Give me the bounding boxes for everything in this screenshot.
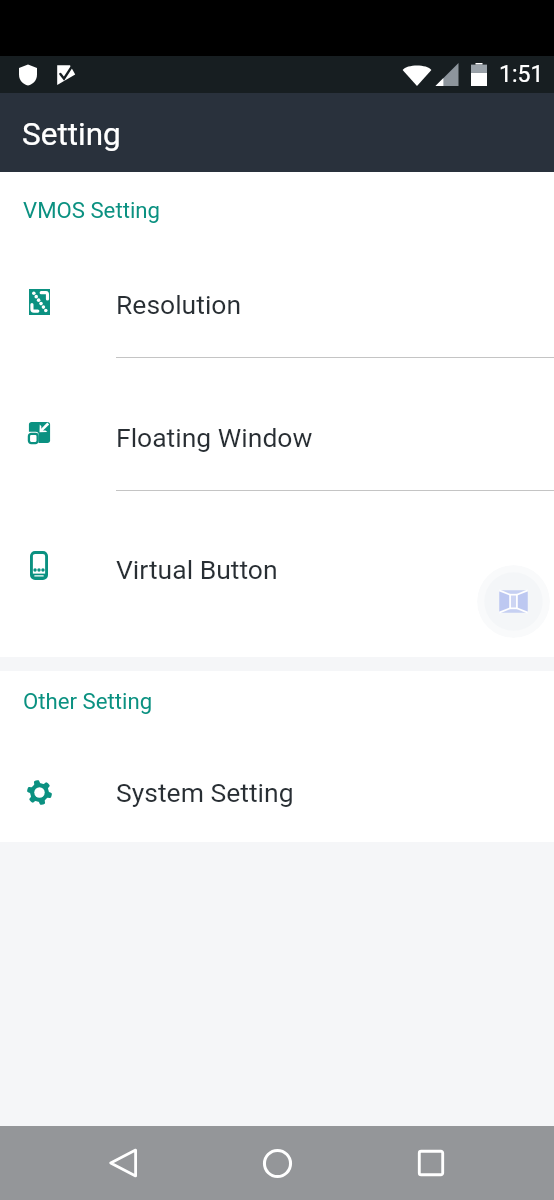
staticText: Resolution (116, 289, 242, 320)
staticText: System Setting (116, 777, 294, 808)
staticText: Floating Window (116, 422, 313, 453)
staticText: 1:51 (499, 61, 544, 88)
staticText: VMOS Setting (23, 197, 161, 223)
button[interactable]: VMOS floating assistant (477, 565, 550, 638)
button[interactable]: Recent apps (379, 1126, 483, 1200)
staticText: Other Setting (23, 688, 153, 714)
button[interactable]: Back (71, 1126, 175, 1200)
button[interactable]: Resolution (0, 278, 554, 330)
button[interactable]: Virtual Button (0, 543, 554, 595)
button[interactable]: System Setting (0, 766, 554, 818)
button[interactable]: Floating Window (0, 411, 554, 463)
staticText: Setting (22, 116, 121, 153)
staticText: Virtual Button (116, 554, 278, 585)
button[interactable]: Home (225, 1126, 329, 1200)
